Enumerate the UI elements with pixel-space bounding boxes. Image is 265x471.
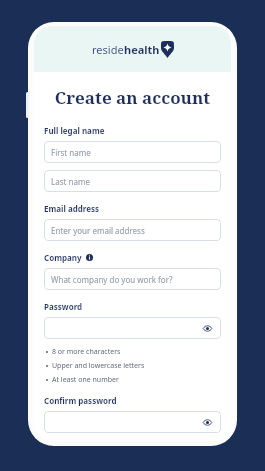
staticText: What company do you work for? <box>51 274 173 285</box>
staticText: Password <box>44 301 83 312</box>
staticText: Confirm password <box>44 395 117 406</box>
staticText: health <box>124 42 160 57</box>
button[interactable]: Enter your email address <box>44 219 221 241</box>
staticText: First name <box>51 147 91 158</box>
staticText: Create an account <box>34 86 231 109</box>
button[interactable]: What company do you work for? <box>44 268 221 290</box>
button[interactable]: Show password <box>44 411 221 433</box>
staticText: reside <box>92 42 124 57</box>
staticText: 8 or more characters <box>52 347 121 357</box>
staticText: Last name <box>51 176 90 187</box>
staticText: Enter your email address <box>51 225 145 236</box>
button[interactable]: Last name <box>44 170 221 192</box>
staticText: Full legal name <box>44 125 105 136</box>
staticText: Upper and lowercase letters <box>52 361 145 371</box>
button[interactable]: Show password <box>44 317 221 339</box>
button[interactable]: Show password <box>200 415 214 429</box>
button[interactable]: Show password <box>200 321 214 335</box>
staticText: Email address <box>44 203 100 214</box>
staticText: At least one number <box>52 375 119 385</box>
staticText: Company <box>44 252 82 263</box>
button[interactable]: First name <box>44 141 221 163</box>
